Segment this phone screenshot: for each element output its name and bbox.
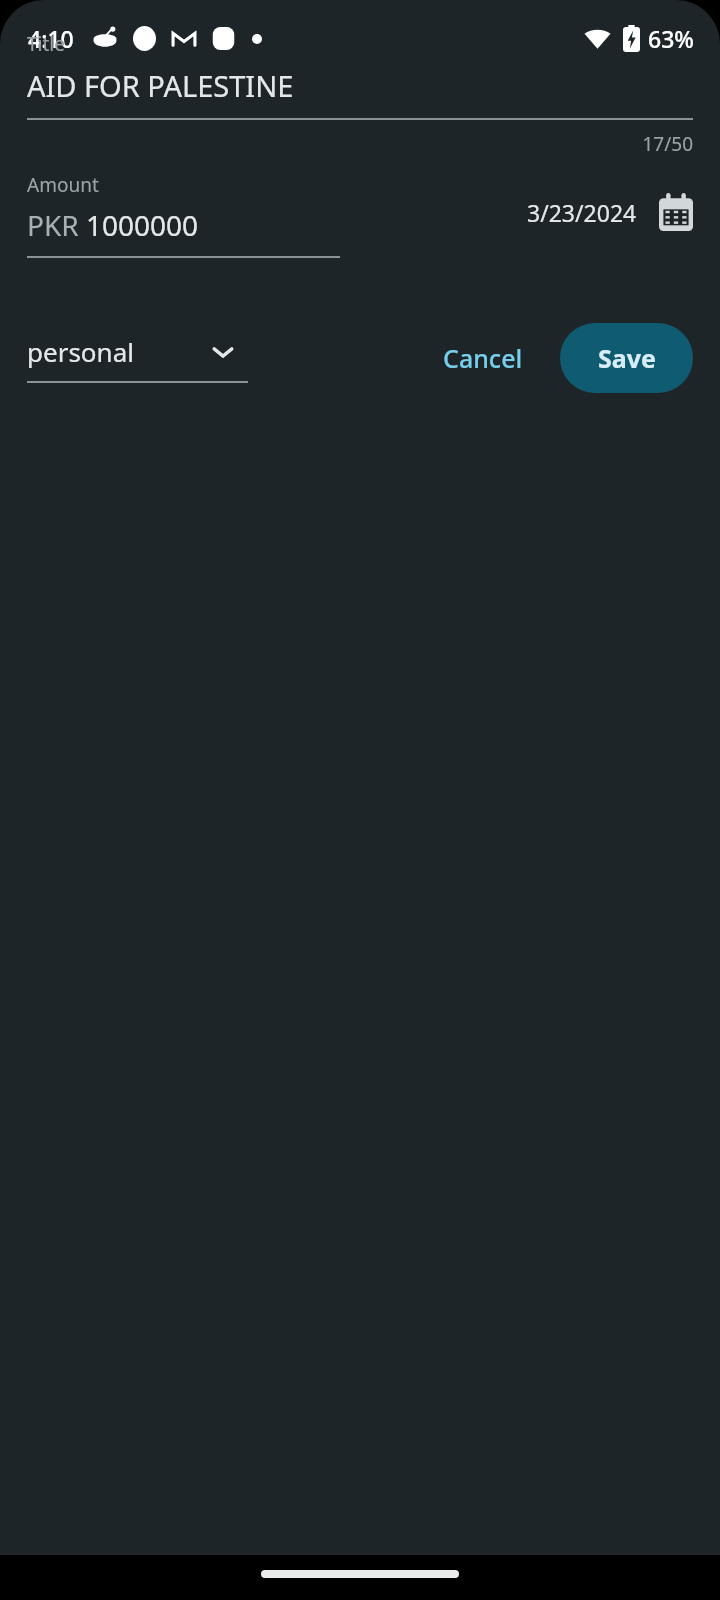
button[interactable]: Title <box>0 31 720 120</box>
button[interactable]: personal <box>27 334 248 383</box>
staticText: 17/50 <box>0 131 693 157</box>
staticText: 1000000 <box>86 206 199 244</box>
staticText: 63% <box>648 23 694 54</box>
staticText: Amount <box>27 172 99 198</box>
staticText: Title <box>27 31 65 57</box>
staticText: 4:10 <box>28 23 74 54</box>
staticText: PKR <box>27 206 86 244</box>
staticText: 3/23/2024 <box>527 197 637 228</box>
staticText: Cancel <box>443 341 523 375</box>
button[interactable]: Pick date <box>527 193 693 231</box>
button[interactable]: Cancel <box>431 327 535 389</box>
button[interactable]: Save <box>560 323 693 393</box>
staticText: Save <box>598 341 656 375</box>
button[interactable]: Amount <box>27 172 340 258</box>
staticText: AID FOR PALESTINE <box>27 66 294 105</box>
staticText: personal <box>27 334 134 369</box>
